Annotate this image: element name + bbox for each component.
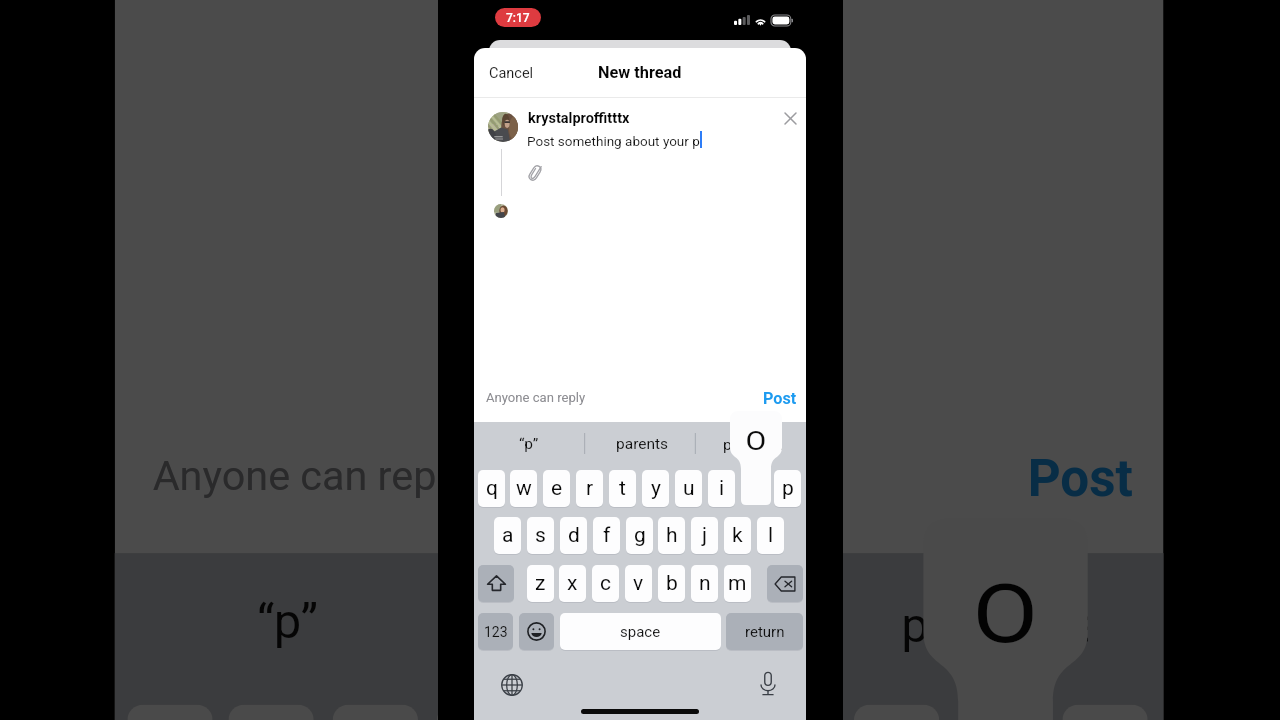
- button[interactable]: p: [1062, 705, 1148, 720]
- staticText: Anyone can reply: [153, 452, 468, 499]
- button[interactable]: r: [437, 705, 522, 720]
- button[interactable]: m: [724, 565, 751, 602]
- button[interactable]: k: [724, 517, 751, 554]
- button[interactable]: “p”: [115, 553, 462, 692]
- staticText: Post: [1028, 449, 1135, 509]
- staticText: i: [719, 476, 725, 501]
- button[interactable]: q: [127, 705, 213, 720]
- button[interactable]: q: [478, 470, 505, 507]
- button[interactable]: s: [527, 517, 554, 554]
- button[interactable]: u: [750, 705, 835, 720]
- button[interactable]: [478, 565, 514, 602]
- staticText: purchase: [901, 597, 1088, 654]
- staticText: 7:17: [506, 11, 530, 25]
- button[interactable]: a: [494, 517, 521, 554]
- staticText: n: [699, 571, 711, 596]
- staticText: 123: [484, 624, 508, 640]
- button[interactable]: Post: [1015, 439, 1148, 515]
- button[interactable]: w: [228, 705, 314, 720]
- staticText: m: [728, 571, 747, 596]
- staticText: purchase: [723, 436, 782, 454]
- button[interactable]: i: [708, 470, 735, 507]
- button[interactable]: y: [645, 705, 731, 720]
- button[interactable]: i: [854, 705, 939, 720]
- button[interactable]: j: [691, 517, 718, 554]
- staticText: s: [535, 523, 546, 548]
- staticText: l: [768, 523, 774, 548]
- button[interactable]: l: [757, 517, 784, 554]
- button[interactable]: t: [541, 705, 626, 720]
- button[interactable]: b: [658, 565, 685, 602]
- staticText: “p”: [257, 594, 320, 651]
- button[interactable]: z: [527, 565, 554, 602]
- button[interactable]: [767, 565, 803, 602]
- button[interactable]: parents: [472, 553, 822, 692]
- button[interactable]: u: [675, 470, 702, 507]
- button[interactable]: c: [592, 565, 619, 602]
- staticText: parents: [563, 594, 731, 651]
- button[interactable]: v: [625, 565, 652, 602]
- staticText: krystalproffitttx: [528, 110, 630, 127]
- staticText: Cancel: [489, 65, 534, 82]
- staticText: z: [535, 571, 546, 596]
- button[interactable]: e: [543, 470, 570, 507]
- staticText: New thread: [598, 63, 682, 82]
- staticText: f: [603, 523, 611, 548]
- staticText: parents: [616, 435, 669, 453]
- button[interactable]: n: [691, 565, 718, 602]
- staticText: d: [568, 523, 580, 548]
- button[interactable]: r: [576, 470, 603, 507]
- staticText: a: [502, 523, 514, 548]
- staticText: t: [619, 476, 626, 501]
- staticText: q: [486, 476, 498, 501]
- button[interactable]: t: [609, 470, 636, 507]
- button[interactable]: x: [559, 565, 586, 602]
- staticText: b: [666, 571, 678, 596]
- staticText: Post something about your p: [527, 133, 700, 149]
- staticText: e: [551, 476, 563, 501]
- staticText: “p”: [519, 435, 539, 453]
- staticText: y: [651, 476, 661, 501]
- button[interactable]: e: [333, 705, 418, 720]
- staticText: x: [567, 571, 578, 596]
- staticText: v: [633, 571, 644, 596]
- button[interactable]: f: [593, 517, 620, 554]
- staticText: r: [586, 476, 594, 501]
- staticText: return: [745, 623, 785, 641]
- button[interactable]: g: [626, 517, 653, 554]
- staticText: Post: [763, 389, 797, 408]
- button[interactable]: w: [510, 470, 537, 507]
- button[interactable]: space: [560, 613, 721, 650]
- button[interactable]: Post: [759, 386, 801, 410]
- staticText: p: [782, 476, 794, 501]
- staticText: k: [732, 523, 743, 548]
- button[interactable]: parents: [587, 422, 698, 466]
- button[interactable]: y: [642, 470, 669, 507]
- button[interactable]: Change keyboard: [501, 674, 523, 696]
- button[interactable]: d: [560, 517, 587, 554]
- button[interactable]: Dictation: [756, 671, 780, 697]
- button[interactable]: h: [658, 517, 685, 554]
- button[interactable]: purchase: [822, 553, 1088, 692]
- staticText: Anyone can reply: [486, 390, 586, 405]
- button[interactable]: p: [774, 470, 801, 507]
- staticText: g: [634, 523, 646, 548]
- button[interactable]: Cancel: [486, 61, 537, 86]
- staticText: w: [516, 476, 532, 501]
- staticText: O: [746, 426, 766, 456]
- button[interactable]: purchase: [698, 422, 782, 466]
- button[interactable]: [519, 613, 554, 650]
- staticText: u: [683, 476, 695, 501]
- staticText: O: [973, 566, 1039, 660]
- staticText: j: [702, 523, 708, 548]
- staticText: h: [666, 523, 678, 548]
- button[interactable]: Remove post: [780, 108, 800, 128]
- button[interactable]: 123: [478, 613, 513, 650]
- button[interactable]: return: [726, 613, 803, 650]
- button[interactable]: “p”: [474, 422, 584, 466]
- button[interactable]: Attach media: [525, 163, 545, 183]
- staticText: c: [600, 571, 611, 596]
- staticText: space: [620, 623, 661, 641]
